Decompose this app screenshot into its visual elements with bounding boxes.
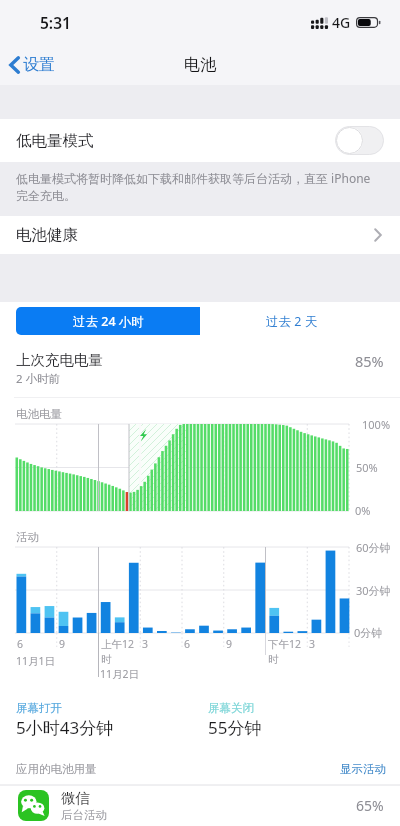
- staticText: 3: [309, 637, 316, 651]
- staticText: 0%: [355, 503, 371, 518]
- button[interactable]: 设置: [0, 49, 65, 81]
- staticText: 设置: [23, 55, 55, 75]
- button[interactable]: 低电量模式开关: [335, 126, 384, 155]
- staticText: 时: [101, 653, 112, 666]
- button[interactable]: 过去 2 天: [200, 307, 384, 335]
- staticText: 后台活动: [61, 808, 107, 822]
- staticText: 低电量模式: [16, 131, 94, 151]
- staticText: 上次充电电量: [16, 351, 103, 369]
- staticText: 65%: [356, 796, 384, 815]
- staticText: 6: [184, 637, 191, 651]
- staticText: 应用的电池用量: [16, 762, 97, 776]
- staticText: 100%: [362, 417, 391, 432]
- staticText: 11月2日: [100, 667, 140, 681]
- staticText: 0分钟: [354, 625, 383, 640]
- staticText: 屏幕关闭: [208, 701, 254, 715]
- staticText: 60分钟: [356, 540, 391, 555]
- staticText: 电池电量: [16, 407, 62, 421]
- button[interactable]: 微信: [0, 785, 400, 826]
- staticText: 3: [142, 637, 149, 651]
- staticText: 11月1日: [16, 654, 56, 668]
- staticText: 过去 2 天: [266, 313, 318, 330]
- staticText: 显示活动: [340, 762, 386, 776]
- staticText: 9: [59, 637, 66, 651]
- staticText: 50%: [356, 460, 378, 475]
- staticText: 屏幕打开: [16, 701, 62, 715]
- staticText: 9: [226, 637, 233, 651]
- button[interactable]: 显示活动: [340, 762, 386, 776]
- button[interactable]: 低电量模式: [0, 119, 400, 162]
- button[interactable]: 电池健康: [0, 216, 400, 254]
- staticText: 2 小时前: [16, 371, 61, 387]
- staticText: 微信: [61, 789, 90, 807]
- button[interactable]: 过去 24 小时: [16, 307, 200, 335]
- staticText: 4G: [332, 13, 351, 32]
- staticText: 5:31: [40, 12, 71, 33]
- staticText: 55分钟: [208, 716, 262, 739]
- staticText: 低电量模式将暂时降低如下载和邮件获取等后台活动，直至 iPhone 完全充电。: [16, 170, 378, 203]
- staticText: 85%: [355, 351, 384, 371]
- staticText: 活动: [16, 530, 39, 544]
- staticText: 上午12: [101, 637, 135, 651]
- staticText: 电池: [184, 55, 216, 75]
- staticText: 电池健康: [16, 225, 78, 245]
- staticText: 5小时43分钟: [16, 716, 114, 739]
- staticText: 过去 24 小时: [73, 313, 144, 330]
- staticText: 下午12: [268, 637, 302, 651]
- staticText: 6: [17, 637, 24, 651]
- staticText: 时: [268, 653, 279, 666]
- staticText: 30分钟: [356, 583, 391, 598]
